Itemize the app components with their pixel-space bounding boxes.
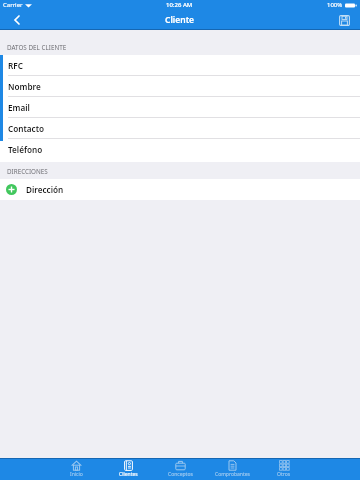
button[interactable]: Comprobantes bbox=[206, 458, 258, 480]
staticText: DIRECCIONES bbox=[7, 167, 48, 176]
staticText: Nombre bbox=[8, 81, 41, 92]
staticText: Carrier bbox=[3, 1, 23, 9]
button[interactable] bbox=[8, 11, 26, 29]
staticText: Otros bbox=[277, 471, 291, 478]
staticText: Contacto bbox=[8, 123, 45, 134]
button[interactable]: Contacto bbox=[0, 118, 360, 139]
button[interactable] bbox=[336, 12, 352, 28]
staticText: Inicio bbox=[70, 471, 83, 478]
button[interactable]: Otros bbox=[258, 458, 310, 480]
button[interactable]: RFC bbox=[0, 55, 360, 76]
button[interactable]: Clientes bbox=[102, 458, 154, 480]
button[interactable]: Inicio bbox=[50, 458, 102, 480]
staticText: Email bbox=[8, 102, 30, 113]
button[interactable]: Dirección bbox=[0, 179, 360, 200]
button[interactable]: Conceptos bbox=[154, 458, 206, 480]
staticText: 100% bbox=[327, 1, 343, 9]
button[interactable]: Nombre bbox=[0, 76, 360, 97]
staticText: Teléfono bbox=[8, 144, 43, 155]
staticText: Comprobantes bbox=[215, 471, 250, 478]
staticText: DATOS DEL CLIENTE bbox=[7, 43, 67, 52]
button[interactable]: Teléfono bbox=[0, 139, 360, 160]
button[interactable]: Email bbox=[0, 97, 360, 118]
staticText: 10:26 AM bbox=[166, 1, 193, 9]
staticText: Clientes bbox=[119, 471, 138, 478]
staticText: RFC bbox=[8, 60, 23, 71]
staticText: Cliente bbox=[165, 14, 195, 26]
staticText: Conceptos bbox=[168, 471, 193, 478]
staticText: Dirección bbox=[26, 184, 64, 195]
